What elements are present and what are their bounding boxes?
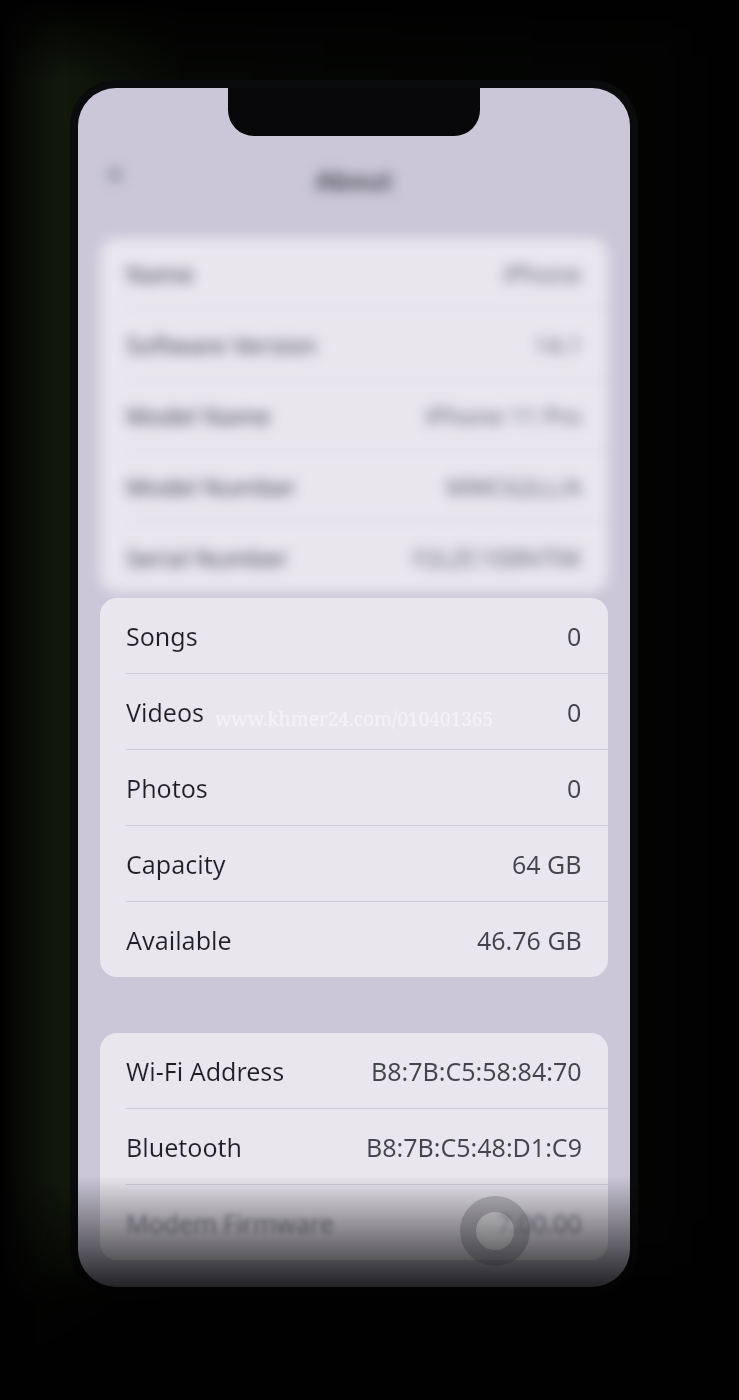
staticText: MWC62LL/A [446, 470, 582, 503]
button[interactable]: Capacity [100, 826, 608, 901]
staticText: F2LZC1E8N70K [413, 541, 582, 574]
staticText: Model Number [126, 470, 297, 503]
button[interactable]: Videos [100, 674, 608, 749]
staticText: iPhone [503, 257, 582, 290]
staticText: 0 [567, 771, 582, 805]
staticText: Modem Firmware [126, 1206, 334, 1240]
staticText: Photos [126, 771, 208, 805]
staticText: 46.76 GB [477, 923, 582, 957]
staticText: 0 [567, 695, 582, 729]
staticText: 7.00.00 [497, 1206, 582, 1240]
staticText: Name [126, 257, 194, 290]
staticText: www.khmer24.com/010401365 [78, 706, 630, 732]
staticText: Capacity [126, 847, 226, 881]
staticText: Videos [126, 695, 205, 729]
button[interactable]: Name [100, 238, 608, 308]
button[interactable]: Back [102, 162, 128, 188]
staticText: B8:7B:C5:58:84:70 [371, 1054, 582, 1088]
button[interactable]: Model Name [100, 380, 608, 450]
button[interactable]: Bluetooth [100, 1109, 608, 1184]
staticText: Bluetooth [126, 1130, 243, 1164]
button[interactable]: Songs [100, 598, 608, 673]
button[interactable]: Software Version [100, 309, 608, 379]
button[interactable]: AssistiveTouch [460, 1196, 530, 1266]
staticText: Serial Number [126, 541, 289, 574]
button[interactable]: Model Number [100, 451, 608, 521]
button[interactable]: Modem Firmware [100, 1185, 608, 1260]
staticText: Wi-Fi Address [126, 1054, 285, 1088]
staticText: Model Name [126, 399, 271, 432]
staticText: B8:7B:C5:48:D1:C9 [366, 1130, 582, 1164]
button[interactable]: Available [100, 902, 608, 977]
staticText: About [78, 162, 630, 197]
staticText: 64 GB [512, 847, 582, 881]
staticText: Songs [126, 619, 198, 653]
staticText: Software Version [126, 328, 317, 361]
staticText: 0 [567, 619, 582, 653]
button[interactable]: Photos [100, 750, 608, 825]
button[interactable]: Serial Number [100, 522, 608, 592]
staticText: iPhone 11 Pro [425, 399, 582, 432]
staticText: Available [126, 923, 232, 957]
staticText: 14.1 [534, 328, 582, 361]
button[interactable]: Wi-Fi Address [100, 1033, 608, 1108]
